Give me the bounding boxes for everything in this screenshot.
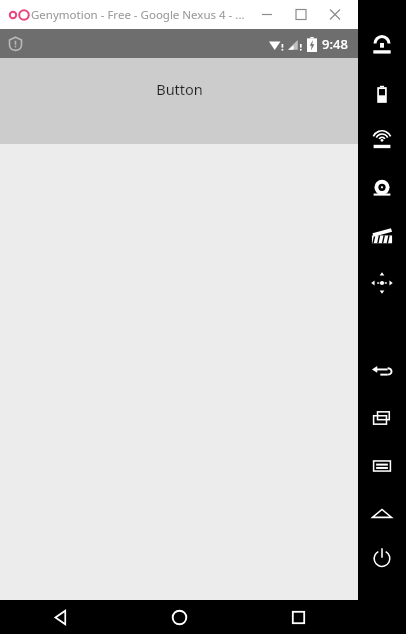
button[interactable]: Recent apps bbox=[239, 600, 358, 634]
staticText: Genymotion - Free - Google Nexus 4 - ... bbox=[31, 7, 245, 23]
button[interactable]: Google Apps bbox=[360, 33, 404, 63]
button[interactable]: Power bbox=[360, 543, 404, 573]
button[interactable]: Home bbox=[360, 499, 404, 529]
button[interactable]: Maximize bbox=[284, 1, 318, 28]
button[interactable]: Back bbox=[0, 600, 120, 634]
button[interactable]: Battery bbox=[360, 80, 404, 110]
button[interactable]: Home bbox=[120, 600, 239, 634]
staticText: Button bbox=[156, 79, 203, 99]
button[interactable]: Recent apps bbox=[360, 403, 404, 433]
button[interactable]: Minimize bbox=[250, 1, 284, 28]
button[interactable]: Menu bbox=[360, 451, 404, 481]
button[interactable]: Camera bbox=[360, 174, 404, 204]
button[interactable]: GPS bbox=[360, 127, 404, 157]
button[interactable]: Screen record bbox=[360, 221, 404, 251]
button[interactable]: Back bbox=[360, 355, 404, 385]
button[interactable]: Button bbox=[0, 58, 358, 144]
button[interactable]: Close bbox=[318, 1, 352, 28]
button[interactable]: Accelerometer bbox=[360, 268, 404, 298]
staticText: 9:48 bbox=[322, 35, 348, 53]
